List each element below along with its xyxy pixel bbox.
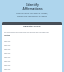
staticText: Affirmation Tracker	[23, 25, 41, 27]
staticText: item text	[4, 52, 11, 54]
staticText: the quick brown fox jumps over the lazy …	[4, 31, 49, 33]
staticText: Section	[4, 34, 11, 36]
staticText: item text	[4, 44, 11, 46]
staticText: Identify	[26, 3, 39, 7]
staticText: item text	[4, 40, 11, 42]
staticText: item text	[4, 60, 11, 62]
staticText: item text	[4, 68, 11, 70]
staticText: item text	[4, 64, 11, 66]
staticText: item text	[4, 48, 11, 50]
staticText: based on what you want to change, identi…	[16, 12, 48, 18]
staticText: item text	[4, 56, 11, 58]
staticText: Affirmations	[22, 7, 43, 11]
